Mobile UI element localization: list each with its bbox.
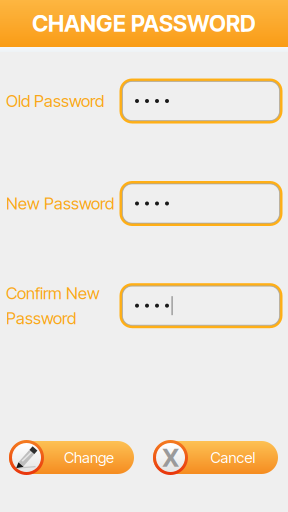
staticText: X [162, 442, 179, 473]
staticText: Password [6, 308, 76, 328]
staticText: Old Password [6, 91, 104, 111]
button[interactable]: Change [9, 440, 134, 475]
staticText: Cancel [210, 448, 255, 467]
staticText: CHANGE PASSWORD [32, 10, 256, 37]
staticText: New Password [6, 193, 114, 214]
staticText: Change [64, 448, 114, 467]
staticText: Confirm New [6, 283, 100, 303]
button[interactable]: Cancel [153, 440, 278, 475]
